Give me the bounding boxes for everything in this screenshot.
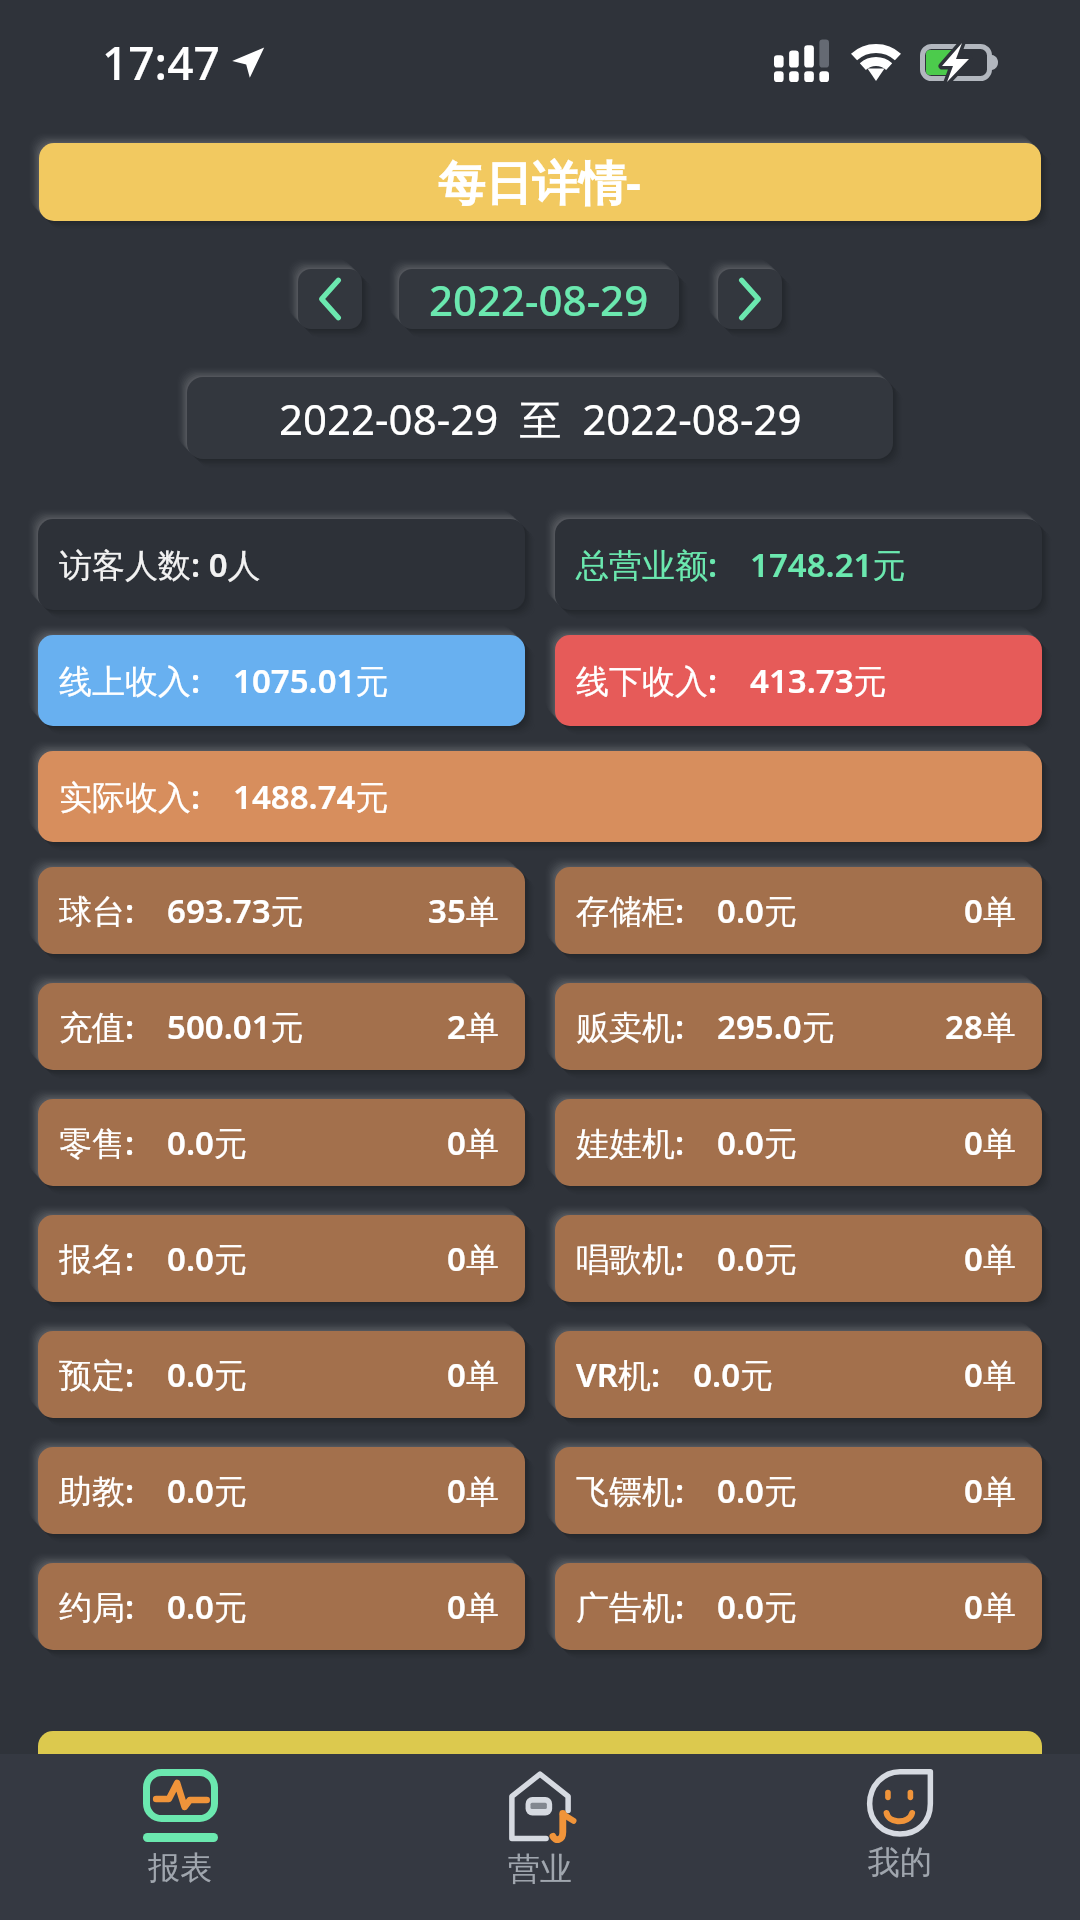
- staticText: VR机: 0.0元: [576, 1352, 774, 1397]
- button[interactable]: 访客人数: 0人: [38, 519, 525, 610]
- staticText: 唱歌机: 0.0元: [576, 1236, 797, 1281]
- staticText: 飞镖机: 0.0元: [576, 1468, 797, 1513]
- staticText: 球台: 693.73元: [59, 888, 304, 933]
- staticText: 0单: [447, 1584, 499, 1629]
- button[interactable]: VR机: 0.0元: [555, 1331, 1042, 1418]
- staticText: 报表: [148, 1848, 212, 1888]
- staticText: 0单: [447, 1120, 499, 1165]
- button[interactable]: [38, 1731, 1042, 1791]
- staticText: 零售: 0.0元: [59, 1120, 247, 1165]
- staticText: 2单: [447, 1004, 499, 1049]
- staticText: 0单: [447, 1352, 499, 1397]
- staticText: 线下收入: 413.73元: [576, 658, 887, 703]
- button[interactable]: 广告机: 0.0元: [555, 1563, 1042, 1650]
- staticText: 总营业额: 1748.21元: [576, 542, 906, 587]
- staticText: 娃娃机: 0.0元: [576, 1120, 797, 1165]
- staticText: 2022-08-29 至 2022-08-29: [279, 390, 802, 447]
- button[interactable]: 球台: 693.73元: [38, 867, 525, 954]
- button[interactable]: 助教: 0.0元: [38, 1447, 525, 1534]
- button[interactable]: 2022-08-29 至 2022-08-29: [187, 377, 893, 459]
- button[interactable]: 充值: 500.01元: [38, 983, 525, 1070]
- staticText: 访客人数: 0人: [59, 542, 261, 587]
- button[interactable]: 约局: 0.0元: [38, 1563, 525, 1650]
- button[interactable]: 2022-08-29: [399, 269, 679, 329]
- staticText: 35单: [428, 888, 499, 933]
- button[interactable]: 我的: [720, 1754, 1080, 1920]
- staticText: 存储柜: 0.0元: [576, 888, 797, 933]
- button[interactable]: 唱歌机: 0.0元: [555, 1215, 1042, 1302]
- staticText: 助教: 0.0元: [59, 1468, 247, 1513]
- staticText: 0单: [447, 1236, 499, 1281]
- staticText: 0单: [964, 1236, 1016, 1281]
- staticText: 约局: 0.0元: [59, 1584, 247, 1629]
- button[interactable]: 报名: 0.0元: [38, 1215, 525, 1302]
- staticText: 0单: [964, 1352, 1016, 1397]
- button[interactable]: 总营业额: 1748.21元: [555, 519, 1042, 610]
- staticText: 我的: [868, 1842, 932, 1882]
- staticText: 0单: [964, 888, 1016, 933]
- staticText: 贩卖机: 295.0元: [576, 1004, 835, 1049]
- button[interactable]: 贩卖机: 295.0元: [555, 983, 1042, 1070]
- staticText: 28单: [945, 1004, 1016, 1049]
- button[interactable]: 每日详情-: [39, 143, 1041, 221]
- button[interactable]: 线上收入: 1075.01元: [38, 635, 525, 726]
- staticText: 预定: 0.0元: [59, 1352, 247, 1397]
- staticText: 每日详情-: [438, 150, 642, 214]
- staticText: 0单: [447, 1468, 499, 1513]
- staticText: 报名: 0.0元: [59, 1236, 247, 1281]
- staticText: 17:47: [102, 31, 220, 94]
- button[interactable]: Next day: [718, 269, 782, 329]
- button[interactable]: 飞镖机: 0.0元: [555, 1447, 1042, 1534]
- staticText: 0单: [964, 1120, 1016, 1165]
- staticText: 线上收入: 1075.01元: [59, 658, 389, 703]
- button[interactable]: 零售: 0.0元: [38, 1099, 525, 1186]
- button[interactable]: 报表: [0, 1754, 360, 1920]
- staticText: 充值: 500.01元: [59, 1004, 304, 1049]
- button[interactable]: 营业: [360, 1754, 720, 1920]
- staticText: 广告机: 0.0元: [576, 1584, 797, 1629]
- staticText: 2022-08-29: [429, 271, 649, 328]
- staticText: 实际收入: 1488.74元: [59, 774, 389, 819]
- staticText: 0单: [964, 1584, 1016, 1629]
- staticText: 营业: [508, 1849, 572, 1889]
- staticText: 0单: [964, 1468, 1016, 1513]
- button[interactable]: 娃娃机: 0.0元: [555, 1099, 1042, 1186]
- button[interactable]: 线下收入: 413.73元: [555, 635, 1042, 726]
- button[interactable]: 实际收入: 1488.74元: [38, 751, 1042, 842]
- button[interactable]: 存储柜: 0.0元: [555, 867, 1042, 954]
- button[interactable]: Previous day: [298, 269, 362, 329]
- button[interactable]: 预定: 0.0元: [38, 1331, 525, 1418]
